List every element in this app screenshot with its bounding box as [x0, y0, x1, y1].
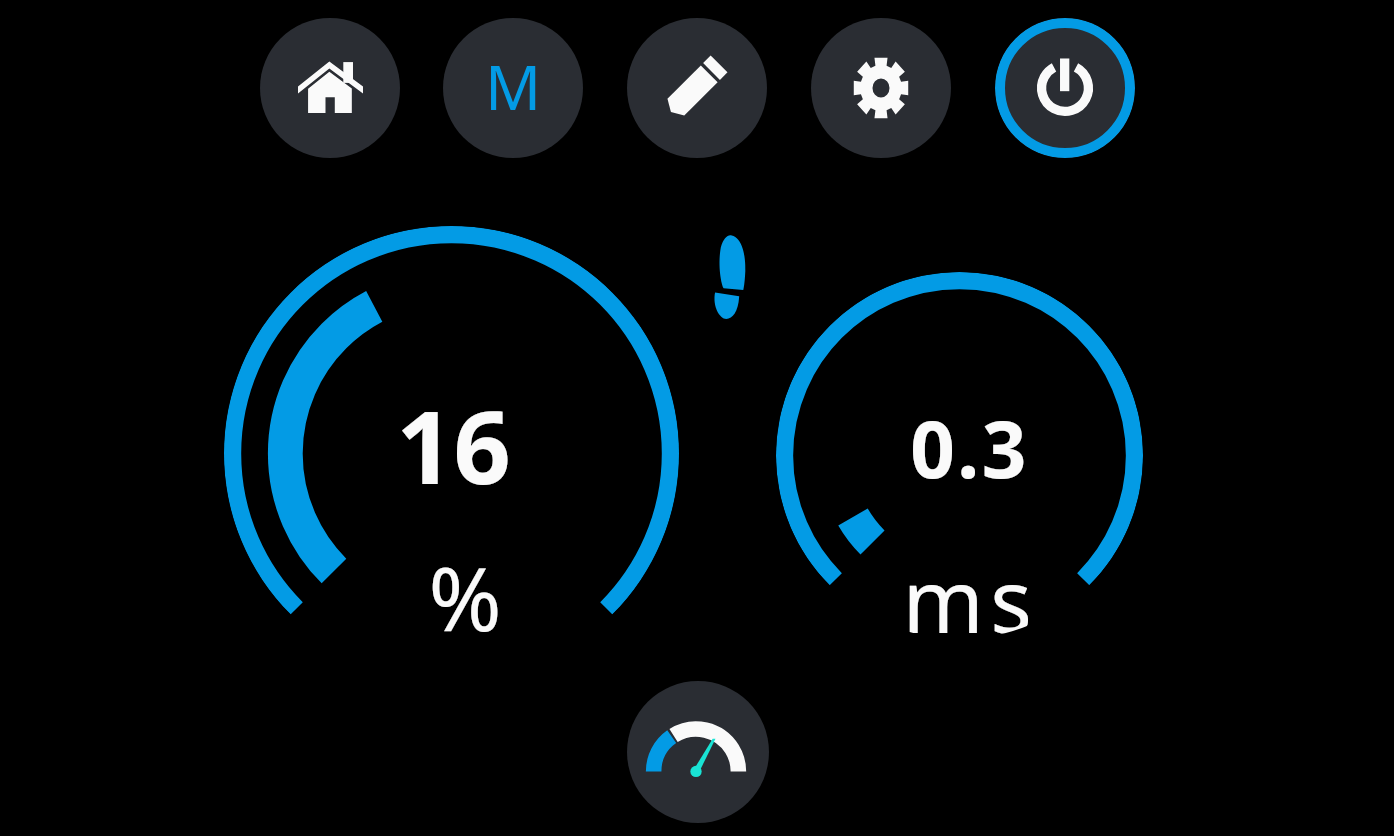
button[interactable]: Settings [811, 18, 951, 158]
staticText: 16 [396, 377, 511, 513]
button[interactable]: Power [995, 18, 1135, 158]
button[interactable]: Dashboard [627, 681, 769, 823]
button[interactable]: Mode [443, 18, 583, 158]
staticText: % [428, 537, 502, 657]
staticText: ms [902, 540, 1039, 639]
staticText: 0.3 [910, 395, 1029, 501]
button[interactable]: 0.3 ms [776, 272, 1143, 639]
button[interactable]: Edit [627, 18, 767, 158]
staticText: M [485, 44, 542, 128]
button[interactable]: 16 % [224, 226, 679, 681]
button[interactable]: Home [260, 18, 400, 158]
